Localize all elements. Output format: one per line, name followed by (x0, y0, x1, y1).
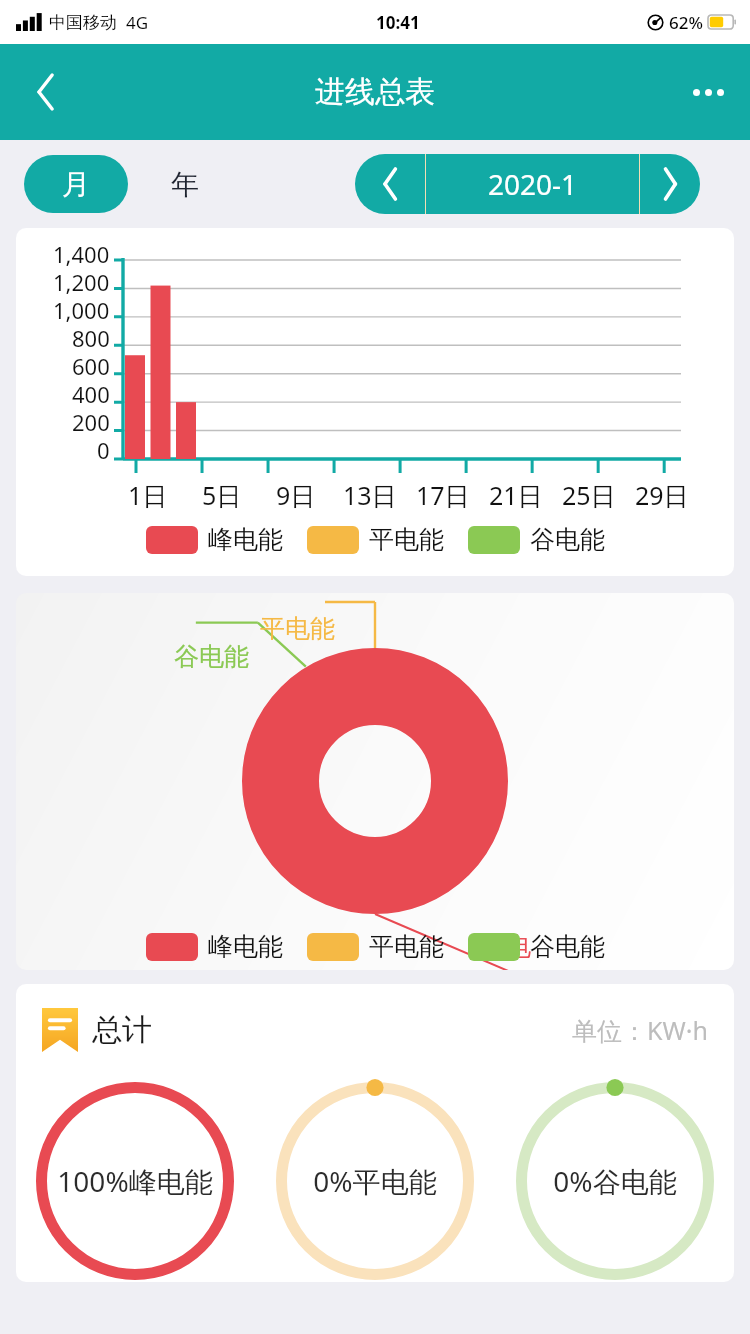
button[interactable]: 平电能 (16, 593, 734, 970)
staticText: 62% (669, 11, 703, 34)
staticText: 5日 (202, 478, 242, 512)
staticText: 峰电能 (208, 931, 283, 962)
button[interactable]: 2020-1 (426, 154, 639, 214)
staticText: 电 (506, 931, 531, 962)
staticText: 谷电能 (530, 931, 605, 962)
button[interactable]: Back (18, 64, 74, 120)
staticText: 0%谷电能 (553, 1162, 677, 1200)
staticText: 峰电能 (208, 524, 283, 555)
staticText: 单位：KW·h (572, 1013, 708, 1047)
staticText: 总计 (92, 1011, 152, 1049)
button[interactable]: Previous month (355, 154, 425, 214)
button[interactable]: More options (680, 64, 736, 120)
staticText: 21日 (489, 478, 543, 512)
staticText: 2020-1 (488, 165, 578, 203)
staticText: 9日 (276, 478, 316, 512)
staticText: 1,200 (53, 267, 110, 295)
staticText: 13日 (343, 478, 397, 512)
staticText: 17日 (416, 478, 470, 512)
staticText: 25日 (562, 478, 616, 512)
staticText: 10:41 (376, 11, 420, 34)
staticText: 800 (72, 323, 110, 351)
staticText: 0 (97, 435, 110, 463)
staticText: 4G (126, 11, 149, 34)
button[interactable]: 月 (24, 155, 128, 213)
staticText: 平电能 (369, 931, 444, 962)
staticText: 1,400 (53, 239, 110, 267)
button[interactable]: 总计 (16, 984, 734, 1282)
staticText: 谷电能 (530, 524, 605, 555)
staticText: 进线总表 (315, 73, 435, 111)
staticText: 0%平电能 (313, 1162, 437, 1200)
staticText: 年 (171, 167, 199, 202)
staticText: 平电能 (260, 613, 335, 644)
staticText: 29日 (635, 478, 689, 512)
button[interactable]: 年 (150, 155, 220, 213)
staticText: 谷电能 (174, 641, 249, 672)
staticText: 100%峰电能 (57, 1162, 213, 1200)
staticText: 200 (72, 407, 110, 435)
button[interactable]: 1,400 (16, 228, 734, 576)
button[interactable]: Next month (640, 154, 700, 214)
staticText: 中国移动 (49, 12, 117, 33)
staticText: 平电能 (369, 524, 444, 555)
staticText: 600 (72, 351, 110, 379)
staticText: 400 (72, 379, 110, 407)
staticText: 月 (62, 167, 90, 202)
staticText: 1,000 (53, 295, 110, 323)
staticText: 1日 (128, 478, 168, 512)
